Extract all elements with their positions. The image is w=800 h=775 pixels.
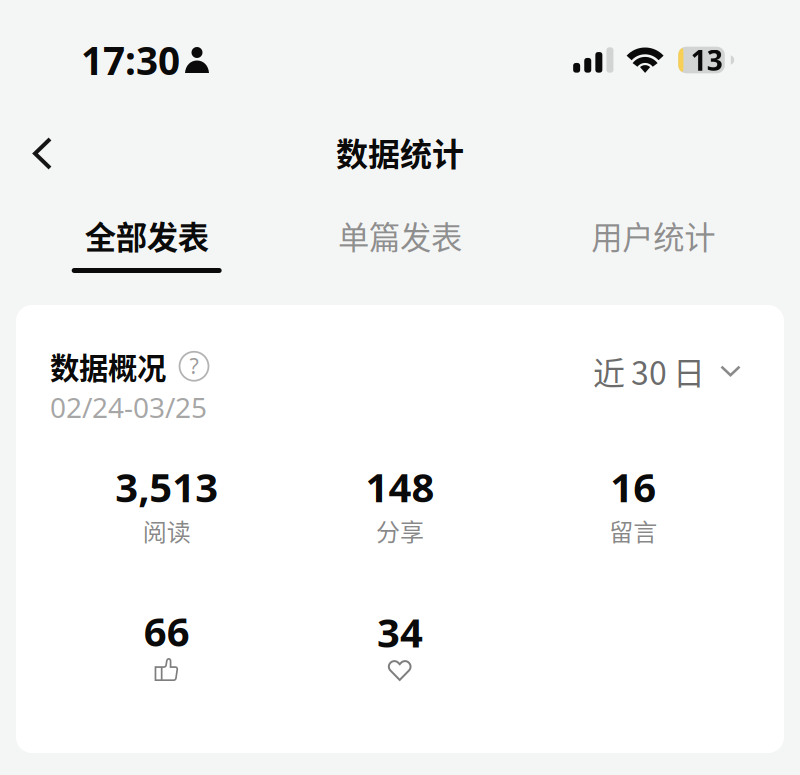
staticText: 3,513	[115, 460, 218, 513]
button[interactable]: 全部发表	[20, 213, 273, 273]
staticText: ?	[189, 352, 198, 380]
button[interactable]: 数据概况说明	[179, 351, 209, 381]
staticText: 34	[377, 605, 423, 658]
staticText: 阅读	[143, 513, 191, 548]
staticText: 148	[365, 460, 434, 513]
staticText: 16	[610, 460, 656, 513]
staticText: 数据概况	[50, 345, 166, 387]
staticText: 近 30 日	[593, 348, 705, 394]
staticText: 分享	[376, 513, 424, 548]
staticText: 数据统计	[336, 129, 464, 175]
staticText: 13	[691, 41, 723, 79]
staticText: 单篇发表	[338, 213, 462, 258]
staticText: 02/24-03/25	[50, 388, 207, 426]
staticText: 17:30	[81, 34, 180, 86]
staticText: 用户统计	[591, 213, 715, 258]
button[interactable]: 用户统计	[527, 213, 780, 273]
button[interactable]: 返回	[17, 123, 68, 184]
button[interactable]: 近 30 日	[593, 348, 741, 394]
staticText: 66	[144, 604, 190, 657]
staticText: 留言	[609, 513, 657, 548]
button[interactable]: 单篇发表	[273, 213, 527, 273]
staticText: 全部发表	[85, 213, 209, 258]
